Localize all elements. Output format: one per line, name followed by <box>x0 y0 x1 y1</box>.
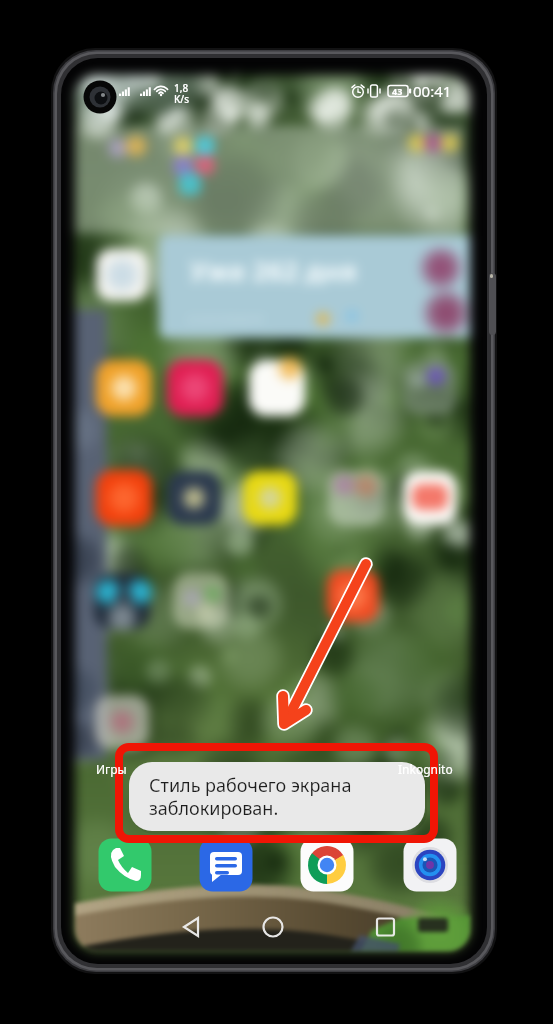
staticText: Уже 262 дня <box>190 252 357 289</box>
staticText: 1,8 <box>174 81 189 95</box>
staticText: K/s <box>174 92 190 106</box>
staticText: 43 <box>392 85 403 97</box>
staticText: Игры <box>96 761 127 777</box>
staticText: Стиль рабочего экрана заблокирован. <box>149 773 352 820</box>
staticText: 00:41 <box>413 81 452 101</box>
staticText: Inkognito <box>398 761 453 777</box>
